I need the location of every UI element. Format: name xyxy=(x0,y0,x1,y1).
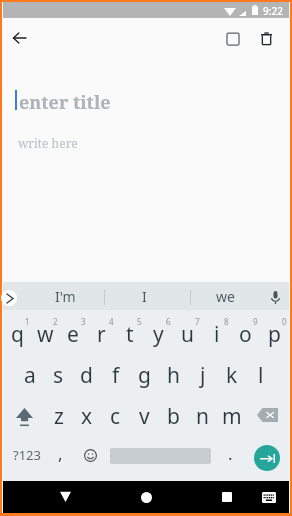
button[interactable]: c xyxy=(101,394,130,436)
button[interactable]: p xyxy=(260,310,289,352)
button[interactable]: f xyxy=(101,352,130,394)
staticText: enter title xyxy=(19,90,111,115)
staticText: 4 xyxy=(109,316,114,327)
button[interactable]: Back xyxy=(5,24,33,52)
staticText: 5 xyxy=(137,316,142,327)
staticText: I'm xyxy=(55,287,76,306)
button[interactable]: I xyxy=(114,282,174,310)
staticText: z xyxy=(54,402,64,431)
staticText: . xyxy=(228,442,233,465)
staticText: 9:22 xyxy=(263,4,283,18)
staticText: 8 xyxy=(224,316,229,327)
staticText: 1 xyxy=(25,316,30,327)
staticText: write here xyxy=(18,135,78,151)
staticText: y xyxy=(153,320,164,349)
button[interactable]: t xyxy=(115,310,144,352)
staticText: f xyxy=(112,361,120,390)
staticText: a xyxy=(24,361,36,390)
button[interactable]: u xyxy=(173,310,202,352)
staticText: m xyxy=(222,402,242,431)
button[interactable]: x xyxy=(73,394,101,436)
button[interactable]: j xyxy=(188,352,217,394)
staticText: c xyxy=(110,402,121,431)
button[interactable]: n xyxy=(188,394,217,436)
button[interactable]: Delete xyxy=(253,25,280,52)
button[interactable]: Recents xyxy=(212,482,242,512)
button[interactable]: Enter xyxy=(254,445,280,471)
button[interactable]: Switch keyboard xyxy=(256,484,282,510)
button[interactable]: y xyxy=(144,310,173,352)
staticText: 7 xyxy=(195,316,200,327)
staticText: v xyxy=(139,402,150,431)
button[interactable]: b xyxy=(159,394,188,436)
staticText: t xyxy=(126,320,134,349)
button[interactable]: r xyxy=(87,310,115,352)
staticText: p xyxy=(268,320,281,349)
button[interactable]: m xyxy=(217,394,246,436)
button[interactable]: Checklist xyxy=(219,25,246,52)
staticText: d xyxy=(80,361,93,390)
staticText: n xyxy=(196,402,209,431)
staticText: l xyxy=(258,361,264,390)
staticText: ?123 xyxy=(13,446,41,464)
button[interactable]: . xyxy=(217,440,243,470)
button[interactable]: a xyxy=(16,352,44,394)
button[interactable]: Voice input xyxy=(263,285,287,309)
button[interactable]: Home xyxy=(131,482,161,512)
button[interactable]: v xyxy=(130,394,159,436)
staticText: s xyxy=(53,361,64,390)
button[interactable]: i xyxy=(202,310,231,352)
button[interactable]: e xyxy=(59,310,87,352)
staticText: q xyxy=(11,320,24,349)
staticText: 0 xyxy=(282,316,287,327)
button[interactable]: Back xyxy=(50,482,80,512)
staticText: g xyxy=(138,361,151,390)
staticText: j xyxy=(200,361,206,390)
button[interactable]: ?123 xyxy=(8,440,46,470)
button[interactable]: z xyxy=(45,394,73,436)
button[interactable]: w xyxy=(31,310,59,352)
staticText: 2 xyxy=(53,316,58,327)
button[interactable]: I'm xyxy=(35,282,95,310)
staticText: b xyxy=(167,402,180,431)
button[interactable]: Shift xyxy=(3,394,45,436)
staticText: i xyxy=(214,320,220,349)
button[interactable]: g xyxy=(130,352,159,394)
staticText: h xyxy=(167,361,180,390)
staticText: I xyxy=(142,287,147,306)
button[interactable]: we xyxy=(195,282,255,310)
staticText: , xyxy=(58,442,63,465)
button[interactable]: Emoji xyxy=(77,440,103,470)
button[interactable]: o xyxy=(231,310,260,352)
button[interactable]: d xyxy=(72,352,101,394)
staticText: r xyxy=(97,320,106,349)
staticText: u xyxy=(181,320,194,349)
button[interactable]: More suggestions xyxy=(1,290,17,306)
button[interactable]: q xyxy=(3,310,31,352)
button[interactable]: , xyxy=(47,440,73,470)
staticText: we xyxy=(216,287,235,306)
staticText: e xyxy=(67,320,79,349)
button[interactable]: l xyxy=(246,352,275,394)
staticText: x xyxy=(81,402,93,431)
staticText: 3 xyxy=(81,316,86,327)
button[interactable]: h xyxy=(159,352,188,394)
button[interactable]: s xyxy=(44,352,72,394)
staticText: o xyxy=(239,320,252,349)
staticText: 6 xyxy=(166,316,171,327)
staticText: k xyxy=(226,361,238,390)
staticText: w xyxy=(37,320,54,349)
button[interactable]: Backspace xyxy=(246,394,289,436)
staticText: 9 xyxy=(253,316,258,327)
button[interactable]: k xyxy=(217,352,246,394)
